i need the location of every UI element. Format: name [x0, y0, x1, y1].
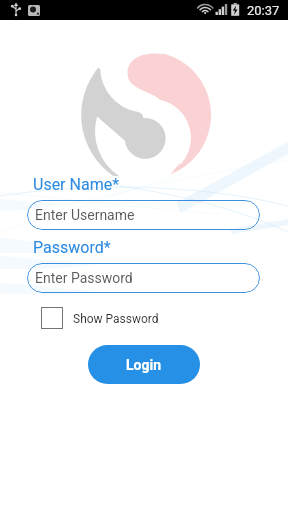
button[interactable]: Enter Password: [27, 263, 260, 293]
button[interactable]: Enter Username: [27, 200, 260, 230]
staticText: 20:37: [247, 3, 280, 18]
other: Status bar: [0, 0, 288, 20]
staticText: Enter Password: [35, 270, 133, 286]
staticText: User Name*: [33, 175, 120, 194]
staticText: Show Password: [73, 312, 159, 326]
button[interactable]: Login: [88, 345, 200, 384]
staticText: Enter Username: [35, 207, 135, 223]
staticText: Password*: [33, 238, 111, 257]
staticText: Login: [126, 357, 162, 373]
button[interactable]: Show Password: [41, 307, 166, 329]
